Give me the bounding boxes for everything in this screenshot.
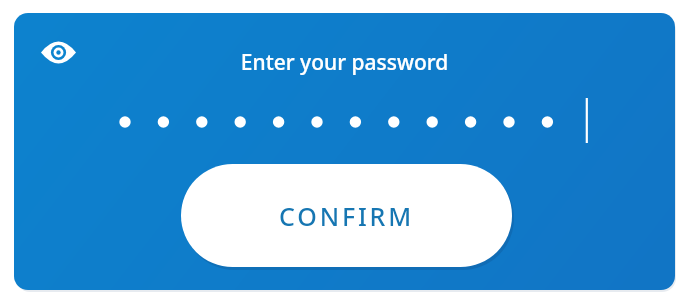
- button[interactable]: Show password: [34, 33, 82, 71]
- staticText: Enter your password: [14, 48, 675, 77]
- button[interactable]: CONFIRM: [181, 164, 512, 267]
- staticText: CONFIRM: [279, 199, 414, 233]
- button[interactable]: Password field: [110, 95, 610, 157]
